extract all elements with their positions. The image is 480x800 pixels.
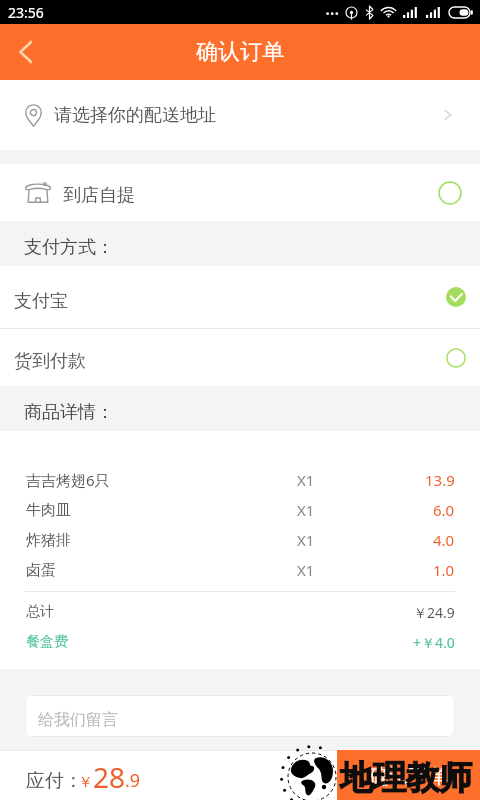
staticText: +￥4.0 (413, 633, 455, 652)
button[interactable]: 给我们留言 (25, 695, 455, 737)
staticText: 到店自提 (63, 184, 135, 207)
staticText: 请选择你的配送地址 (54, 104, 216, 127)
staticText: X1 (297, 560, 315, 580)
staticText: 确认下单 (369, 764, 449, 789)
staticText: 货到付款 (14, 350, 86, 373)
button[interactable]: 确认下单 (337, 750, 480, 800)
staticText: 确认订单 (196, 38, 284, 66)
button[interactable]: Back (0, 26, 52, 78)
staticText: 商品详情： (24, 401, 114, 424)
staticText: X1 (297, 500, 315, 520)
button[interactable]: 货到付款 (0, 329, 480, 386)
button[interactable]: 到店自提 (0, 164, 480, 221)
staticText: 28 (93, 758, 126, 796)
staticText: X1 (297, 530, 315, 550)
staticText: 13.9 (425, 470, 455, 490)
staticText: 应付： (26, 769, 83, 793)
staticText: 1.0 (433, 560, 455, 580)
staticText: 给我们留言 (38, 710, 118, 730)
staticText: 23:56 (8, 3, 44, 22)
button[interactable]: 支付宝 (0, 266, 480, 328)
staticText: 4.0 (433, 530, 455, 550)
staticText: ￥ (78, 773, 93, 792)
staticText: 支付方式： (24, 236, 114, 259)
staticText: 炸猪排 (26, 531, 71, 550)
staticText: 牛肉皿 (26, 501, 71, 520)
staticText: X1 (297, 470, 315, 490)
staticText: 卤蛋 (26, 561, 56, 580)
staticText: 地理教师 (340, 757, 472, 799)
staticText: 餐盒费 (26, 633, 68, 651)
staticText: 6.0 (433, 500, 455, 520)
staticText: .9 (125, 768, 141, 793)
staticText: 支付宝 (14, 290, 68, 313)
staticText: 吉吉烤翅6只 (26, 470, 110, 490)
staticText: ￥24.9 (413, 603, 455, 622)
button[interactable]: 请选择你的配送地址 (0, 80, 480, 150)
staticText: 总计 (26, 603, 54, 621)
